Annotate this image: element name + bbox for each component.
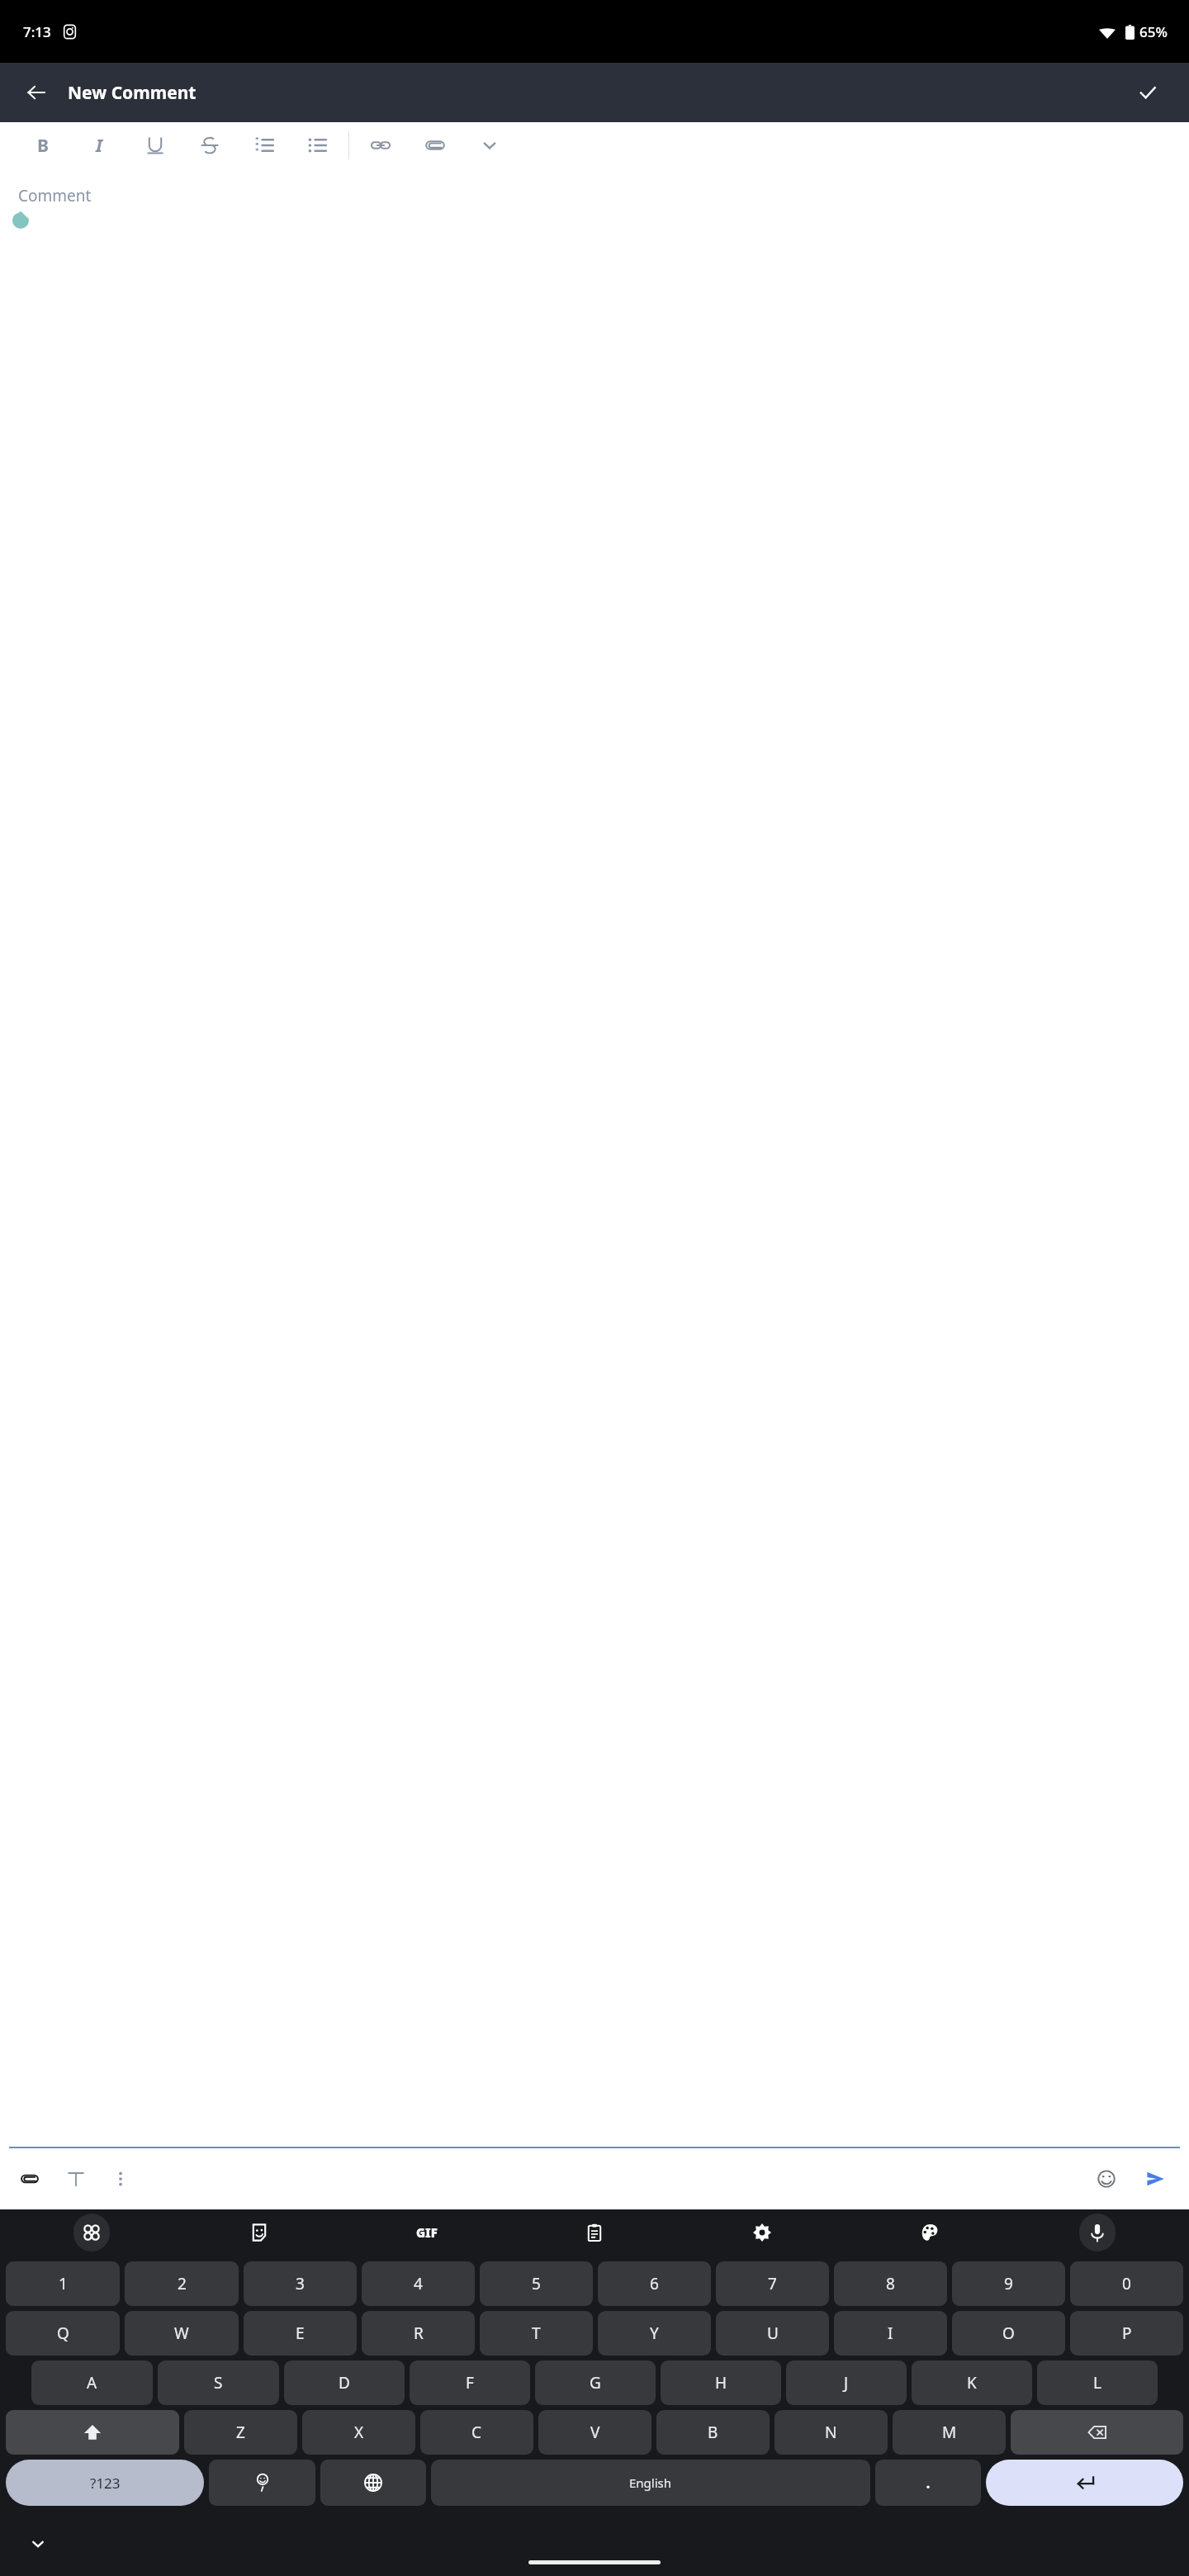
staticText: W <box>174 2323 189 2344</box>
button[interactable]: Settings <box>678 2209 846 2256</box>
button[interactable]: ?123 <box>6 2460 204 2506</box>
staticText: T <box>532 2323 541 2344</box>
staticText: D <box>339 2372 350 2394</box>
button[interactable]: 2 <box>125 2261 239 2306</box>
staticText: S <box>214 2372 223 2394</box>
button[interactable]: E <box>244 2311 357 2356</box>
button[interactable]: 6 <box>598 2261 711 2306</box>
button[interactable]: Change language <box>320 2460 426 2506</box>
button[interactable]: Q <box>6 2311 120 2356</box>
button[interactable]: Y <box>598 2311 711 2356</box>
button[interactable]: Voice input <box>1013 2209 1181 2256</box>
button[interactable]: G <box>535 2361 656 2405</box>
button[interactable]: Text format <box>58 2161 94 2197</box>
button[interactable]: Hide keyboard <box>20 2526 56 2562</box>
staticText: 5 <box>532 2273 541 2294</box>
button[interactable]: W <box>125 2311 239 2356</box>
staticText: J <box>844 2372 849 2394</box>
button[interactable]: Backspace <box>1011 2410 1183 2455</box>
staticText: GIF <box>416 2224 438 2241</box>
button[interactable]: Enter <box>986 2460 1183 2506</box>
button[interactable]: I <box>81 127 117 163</box>
button[interactable]: 8 <box>834 2261 947 2306</box>
button[interactable]: M <box>893 2410 1006 2455</box>
button[interactable]: Attach file <box>417 127 453 163</box>
button[interactable]: Keyboard modes <box>8 2209 175 2256</box>
button[interactable]: Emoji <box>1088 2161 1125 2197</box>
staticText: 0 <box>1122 2273 1131 2294</box>
button[interactable]: T <box>480 2311 593 2356</box>
staticText: 1 <box>59 2273 68 2294</box>
button[interactable]: Stickers <box>175 2209 343 2256</box>
button[interactable]: O <box>952 2311 1065 2356</box>
staticText: Comment <box>18 185 92 206</box>
button[interactable]: K <box>912 2361 1032 2405</box>
staticText: 4 <box>414 2273 423 2294</box>
button[interactable]: More formatting <box>471 127 508 163</box>
button[interactable]: B <box>656 2410 770 2455</box>
button[interactable]: R <box>362 2311 475 2356</box>
staticText: B <box>708 2422 718 2443</box>
button[interactable]: 9 <box>952 2261 1065 2306</box>
button[interactable]: P <box>1070 2311 1183 2356</box>
button[interactable]: F <box>410 2361 530 2405</box>
button[interactable]: Shift <box>6 2410 179 2455</box>
button[interactable]: D <box>284 2361 405 2405</box>
button[interactable]: L <box>1037 2361 1158 2405</box>
button[interactable]: Emoji keyboard <box>209 2460 315 2506</box>
staticText: M <box>942 2422 957 2443</box>
button[interactable]: C <box>420 2410 533 2455</box>
button[interactable]: H <box>661 2361 781 2405</box>
staticText: 3 <box>296 2273 305 2294</box>
staticText: 2 <box>178 2273 187 2294</box>
staticText: 65% <box>1139 22 1168 41</box>
button[interactable]: Send <box>1133 2157 1177 2201</box>
staticText: ?123 <box>90 2474 121 2493</box>
button[interactable]: Underline <box>137 127 173 163</box>
button[interactable]: I <box>834 2311 947 2356</box>
button[interactable]: Clipboard <box>510 2209 678 2256</box>
staticText: B <box>37 134 49 158</box>
button[interactable]: B <box>25 127 61 163</box>
button[interactable]: Save comment <box>1128 73 1168 112</box>
staticText: O <box>1002 2323 1015 2344</box>
button[interactable]: Bulleted list <box>299 127 335 163</box>
button[interactable]: 5 <box>480 2261 593 2306</box>
button[interactable]: 7 <box>716 2261 829 2306</box>
button[interactable]: Themes <box>846 2209 1013 2256</box>
button[interactable]: V <box>538 2410 651 2455</box>
button[interactable]: U <box>716 2311 829 2356</box>
staticText: 7:13 <box>23 22 51 41</box>
button[interactable]: English <box>431 2460 870 2506</box>
button[interactable]: Attach <box>12 2161 48 2197</box>
button[interactable]: 0 <box>1070 2261 1183 2306</box>
staticText: V <box>590 2422 600 2443</box>
staticText: C <box>471 2422 482 2443</box>
button[interactable]: X <box>302 2410 415 2455</box>
button[interactable]: 3 <box>244 2261 357 2306</box>
button[interactable]: More options <box>102 2161 139 2197</box>
staticText: K <box>967 2372 977 2394</box>
staticText: H <box>715 2372 727 2394</box>
button[interactable]: S <box>158 2361 279 2405</box>
button[interactable]: 1 <box>6 2261 120 2306</box>
button[interactable]: N <box>775 2410 888 2455</box>
staticText: X <box>354 2422 364 2443</box>
button[interactable]: Z <box>184 2410 297 2455</box>
staticText: N <box>825 2422 837 2443</box>
staticText: 7 <box>768 2273 777 2294</box>
button[interactable]: GIF <box>343 2209 510 2256</box>
staticText: I <box>888 2323 893 2344</box>
button[interactable]: Period <box>875 2460 981 2506</box>
button[interactable]: Numbered list <box>246 127 282 163</box>
button[interactable]: A <box>31 2361 153 2405</box>
staticText: P <box>1122 2323 1132 2344</box>
button[interactable]: J <box>786 2361 907 2405</box>
button[interactable]: 4 <box>362 2261 475 2306</box>
staticText: U <box>767 2323 779 2344</box>
button[interactable]: Insert link <box>362 127 399 163</box>
staticText: Q <box>57 2323 69 2344</box>
button[interactable]: Back <box>17 73 56 112</box>
button[interactable]: Strikethrough <box>192 127 228 163</box>
